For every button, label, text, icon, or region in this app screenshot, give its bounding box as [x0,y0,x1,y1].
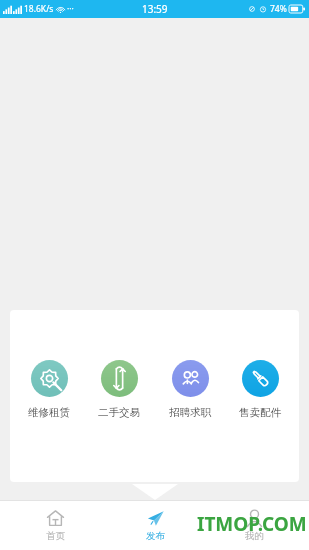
staticText: 18.6K/s [24,3,54,15]
staticText: 二手交易 [98,406,140,419]
button[interactable]: 招聘求职 [159,358,221,421]
button[interactable]: 发布 [110,500,200,550]
staticText: 维修租赁 [28,406,70,419]
staticText: ··· [67,3,74,15]
staticText: 我的 [245,530,264,542]
staticText: 13:59 [142,2,168,16]
button[interactable]: 我的 [209,500,299,550]
button[interactable]: 维修租赁 [18,358,80,421]
staticText: 发布 [146,530,165,542]
button[interactable]: 首页 [10,500,100,550]
staticText: 首页 [46,530,65,542]
button[interactable]: 二手交易 [88,358,150,421]
staticText: 74% [270,3,287,15]
staticText: 招聘求职 [169,406,211,419]
staticText: 售卖配件 [239,406,281,419]
staticText: ITMOP.COM [197,511,307,537]
button[interactable]: 售卖配件 [229,358,291,421]
